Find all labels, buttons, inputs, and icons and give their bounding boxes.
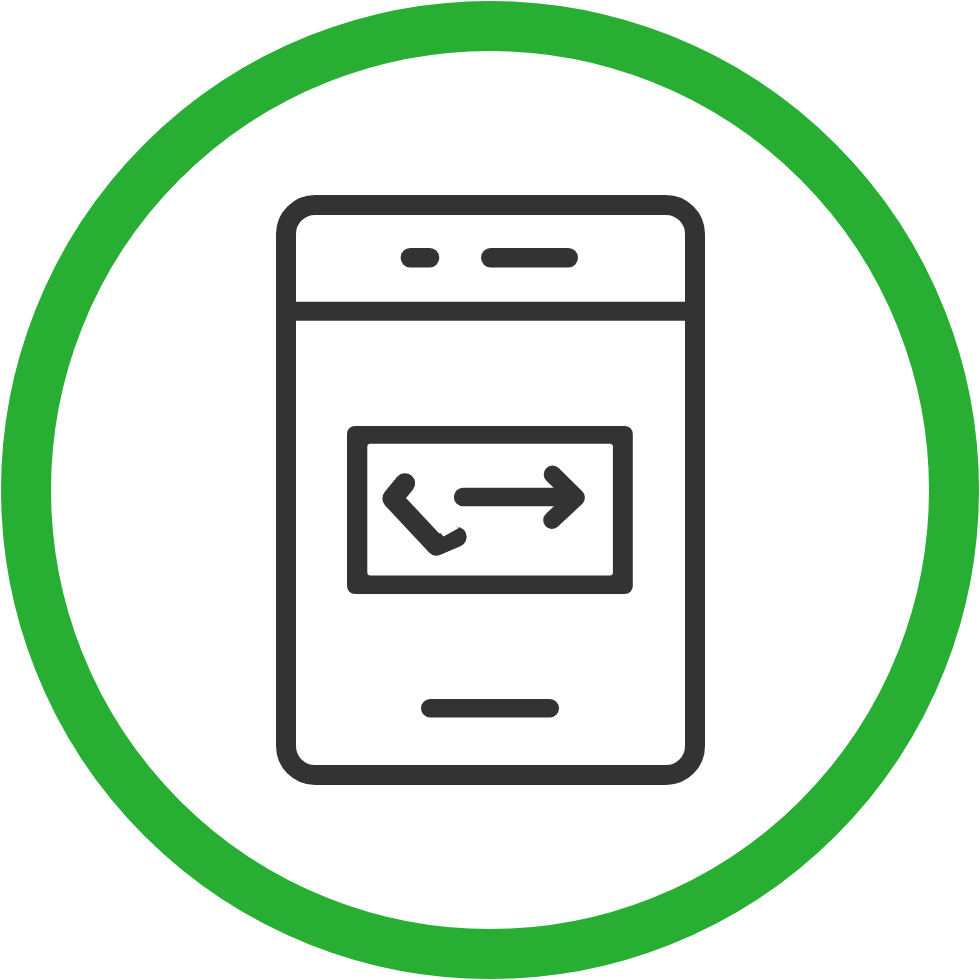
button[interactable]: Call forwarding [0,0,980,980]
